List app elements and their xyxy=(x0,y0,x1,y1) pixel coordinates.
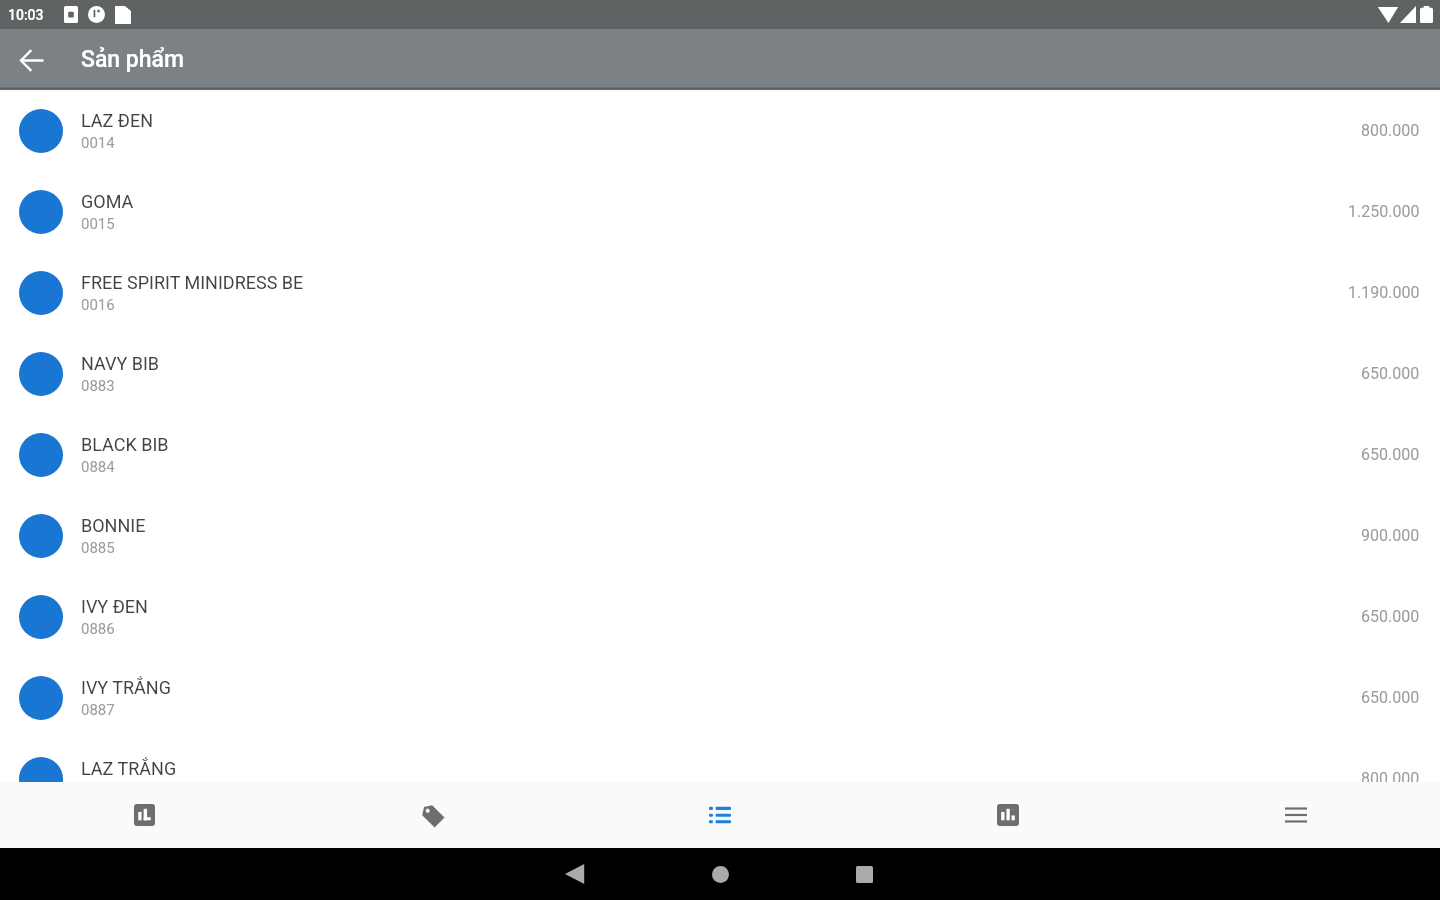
button[interactable]: IVY TRẮNG xyxy=(0,657,1440,738)
button[interactable]: BONNIE xyxy=(0,495,1440,576)
staticText: 650.000 xyxy=(1361,607,1420,626)
button[interactable]: Tags xyxy=(288,782,576,848)
staticText: 10:03 xyxy=(8,7,44,23)
staticText: 0016 xyxy=(81,296,115,314)
staticText: 1.250.000 xyxy=(1348,202,1420,221)
staticText: 650.000 xyxy=(1361,364,1420,383)
staticText: FREE SPIRIT MINIDRESS BE xyxy=(81,272,304,293)
staticText: LAZ TRẮNG xyxy=(81,758,177,779)
button[interactable]: Home xyxy=(697,851,743,897)
staticText: 0883 xyxy=(81,377,115,395)
staticText: 0887 xyxy=(81,701,115,719)
staticText: IVY ĐEN xyxy=(81,596,148,617)
staticText: 0015 xyxy=(81,215,115,233)
staticText: NAVY BIB xyxy=(81,353,160,374)
staticText: 800.000 xyxy=(1361,769,1420,782)
button[interactable]: Reports xyxy=(864,782,1152,848)
staticText: LAZ ĐEN xyxy=(81,110,153,131)
button[interactable]: Back xyxy=(10,38,54,82)
button[interactable]: LAZ TRẮNG xyxy=(0,738,1440,782)
staticText: 900.000 xyxy=(1361,526,1420,545)
button[interactable]: IVY ĐEN xyxy=(0,576,1440,657)
button[interactable]: NAVY BIB xyxy=(0,333,1440,414)
button[interactable]: FREE SPIRIT MINIDRESS BE xyxy=(0,252,1440,333)
button[interactable]: BLACK BIB xyxy=(0,414,1440,495)
staticText: 650.000 xyxy=(1361,445,1420,464)
button[interactable]: Recents xyxy=(841,851,887,897)
staticText: 1.190.000 xyxy=(1348,283,1420,302)
staticText: IVY TRẮNG xyxy=(81,677,171,698)
staticText: 0014 xyxy=(81,134,115,152)
staticText: BONNIE xyxy=(81,515,146,536)
staticText: GOMA xyxy=(81,191,134,212)
staticText: 0886 xyxy=(81,620,115,638)
staticText: Sản phẩm xyxy=(81,46,184,73)
staticText: 800.000 xyxy=(1361,121,1420,140)
staticText: BLACK BIB xyxy=(81,434,169,455)
button[interactable]: Back xyxy=(552,851,598,897)
button[interactable]: Menu xyxy=(1152,782,1440,848)
staticText: 0884 xyxy=(81,458,115,476)
staticText: 0885 xyxy=(81,539,115,557)
button[interactable]: Store xyxy=(0,782,288,848)
staticText: 650.000 xyxy=(1361,688,1420,707)
button[interactable]: LAZ ĐEN xyxy=(0,90,1440,171)
button[interactable]: Products xyxy=(576,782,864,848)
button[interactable]: GOMA xyxy=(0,171,1440,252)
